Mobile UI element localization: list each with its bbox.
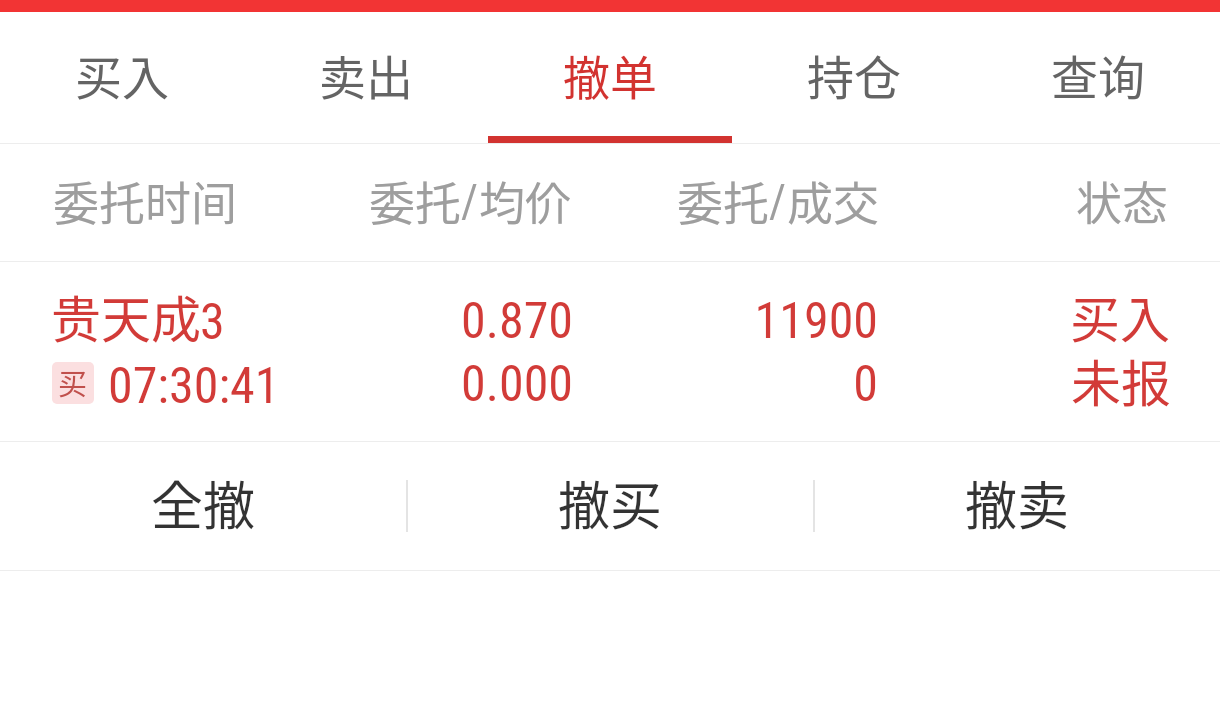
staticText: 状态	[1076, 167, 1168, 234]
button[interactable]: 查询	[976, 12, 1220, 143]
staticText: 买入	[1070, 280, 1170, 352]
staticText: 卖出	[319, 40, 413, 108]
staticText: 0.870	[0, 292, 573, 351]
staticText: 07:30:41	[108, 357, 280, 416]
button[interactable]: 买入	[0, 12, 244, 143]
staticText: 贵天成	[51, 280, 201, 352]
staticText: 0.000	[0, 355, 573, 414]
staticText: /	[769, 174, 787, 228]
button[interactable]: 全撤	[0, 442, 406, 570]
button[interactable]: 卖出	[244, 12, 488, 143]
staticText: 撤买	[558, 465, 663, 540]
staticText: 查询	[1051, 40, 1145, 108]
button[interactable]: 持仓	[732, 12, 976, 143]
staticText: 撤单	[563, 40, 657, 108]
button[interactable]: 撤卖	[814, 442, 1220, 570]
staticText: 全撤	[151, 465, 256, 540]
staticText: 持仓	[807, 40, 901, 108]
staticText: /	[461, 174, 479, 228]
staticText: 3	[200, 293, 225, 352]
staticText: 撤卖	[965, 465, 1070, 540]
button[interactable]: 撤单	[488, 12, 732, 143]
staticText: 0	[0, 355, 878, 414]
staticText: 未报	[1071, 344, 1171, 416]
staticText: 委托时间	[53, 167, 237, 234]
staticText: 买入	[75, 40, 169, 108]
button[interactable]: 撤买	[407, 442, 814, 570]
staticText: 委托	[677, 167, 769, 234]
staticText: 买	[58, 362, 88, 403]
button[interactable]: 贵天成3 买入 未报 委托单	[0, 262, 1220, 441]
staticText: 11900	[0, 292, 878, 351]
staticText: 均价	[479, 167, 571, 234]
staticText: 委托	[369, 167, 461, 234]
staticText: 成交	[787, 167, 879, 234]
